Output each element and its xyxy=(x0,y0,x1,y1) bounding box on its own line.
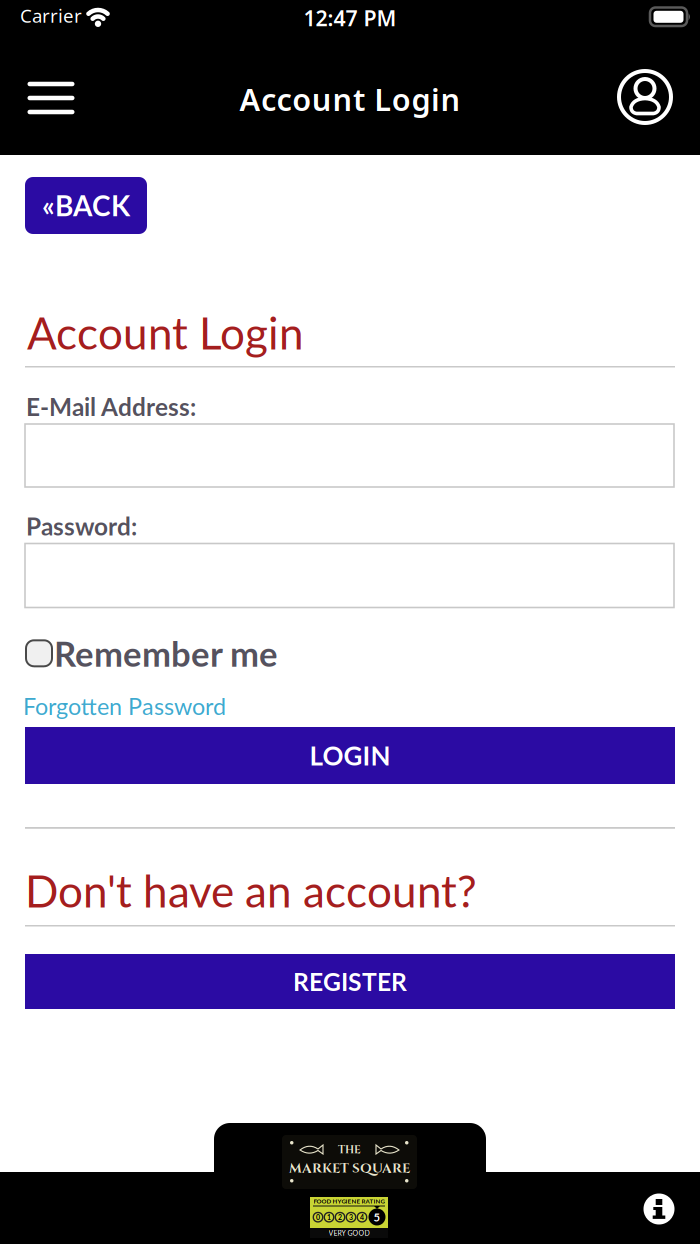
staticText: 5 xyxy=(373,1210,380,1224)
staticText: Password: xyxy=(26,511,137,541)
button[interactable] xyxy=(643,1193,674,1224)
staticText: «BACK xyxy=(42,189,130,222)
staticText: Forgotten Password xyxy=(23,692,226,720)
button[interactable]: LOGIN xyxy=(25,727,675,784)
button[interactable] xyxy=(25,424,674,487)
staticText: Don't have an account? xyxy=(25,864,477,917)
staticText: Account Login xyxy=(27,306,304,359)
staticText: LOGIN xyxy=(309,740,390,771)
staticText: E-Mail Address: xyxy=(26,392,196,421)
button[interactable]: REGISTER xyxy=(25,954,675,1009)
staticText: 12:47 PM xyxy=(303,4,396,32)
button[interactable]: Remember me xyxy=(26,632,278,674)
staticText: MARKET SQUARE xyxy=(289,1159,410,1177)
staticText: Account Login xyxy=(239,78,461,120)
button[interactable] xyxy=(25,543,674,607)
staticText: 1 xyxy=(327,1213,331,1221)
button[interactable]: «BACK xyxy=(25,177,147,234)
button[interactable] xyxy=(615,67,675,127)
button[interactable] xyxy=(21,74,81,122)
staticText: 4 xyxy=(360,1213,364,1221)
staticText: 0 xyxy=(316,1213,320,1221)
staticText: 3 xyxy=(349,1213,353,1221)
staticText: REGISTER xyxy=(293,967,407,996)
staticText: FOOD HYGIENE RATING xyxy=(313,1197,384,1205)
staticText: THE xyxy=(338,1143,361,1157)
staticText: Remember me xyxy=(54,632,278,674)
staticText: Carrier xyxy=(20,3,82,28)
staticText: 2 xyxy=(338,1213,342,1221)
staticText: VERY GOOD xyxy=(328,1229,369,1237)
button[interactable]: Forgotten Password xyxy=(23,692,226,720)
